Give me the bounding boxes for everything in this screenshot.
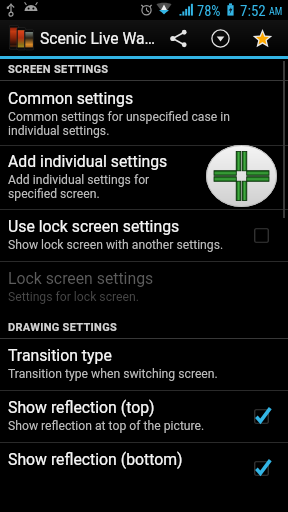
button[interactable]: Rate	[241, 20, 283, 56]
staticText: Show lock screen with another settings.	[8, 238, 224, 252]
staticText: Settings for lock screen.	[8, 290, 139, 304]
button[interactable]: Lock screen settings	[0, 262, 288, 314]
staticText: Transition type	[8, 346, 112, 365]
staticText: Show reflection (top)	[8, 398, 155, 417]
staticText: Use lock screen settings	[8, 217, 180, 236]
button[interactable]: Use lock screen settings	[0, 210, 288, 261]
staticText: Common settings	[8, 89, 134, 108]
button[interactable]: Show reflection (bottom)	[0, 443, 288, 494]
button[interactable]: Share	[157, 20, 199, 56]
staticText: 78%	[197, 3, 221, 20]
staticText: Show reflection at top of the picture.	[8, 419, 205, 433]
staticText: Common settings for unspecified case in …	[8, 110, 230, 138]
staticText: DRAWING SETTINGS	[8, 321, 118, 334]
staticText: Lock screen settings	[8, 269, 154, 288]
staticText: Add individual settings for specified sc…	[8, 173, 150, 201]
staticText: Scenic Live Wa…	[40, 29, 156, 47]
staticText: SCREEN SETTINGS	[8, 63, 109, 76]
button[interactable]: Transition type	[0, 339, 288, 390]
staticText: Add individual settings	[8, 152, 168, 171]
staticText: Show reflection (bottom)	[8, 450, 183, 469]
button[interactable]: Add individual settings	[0, 146, 288, 209]
button[interactable]: More options	[199, 20, 241, 56]
button[interactable]: Common settings	[0, 81, 288, 145]
staticText: AM	[269, 6, 283, 18]
button[interactable]: Show reflection (top)	[0, 391, 288, 442]
staticText: 7:52	[240, 2, 266, 20]
staticText: Transition type when switching screen.	[8, 367, 218, 381]
button[interactable]: Add individual settings	[206, 145, 277, 207]
